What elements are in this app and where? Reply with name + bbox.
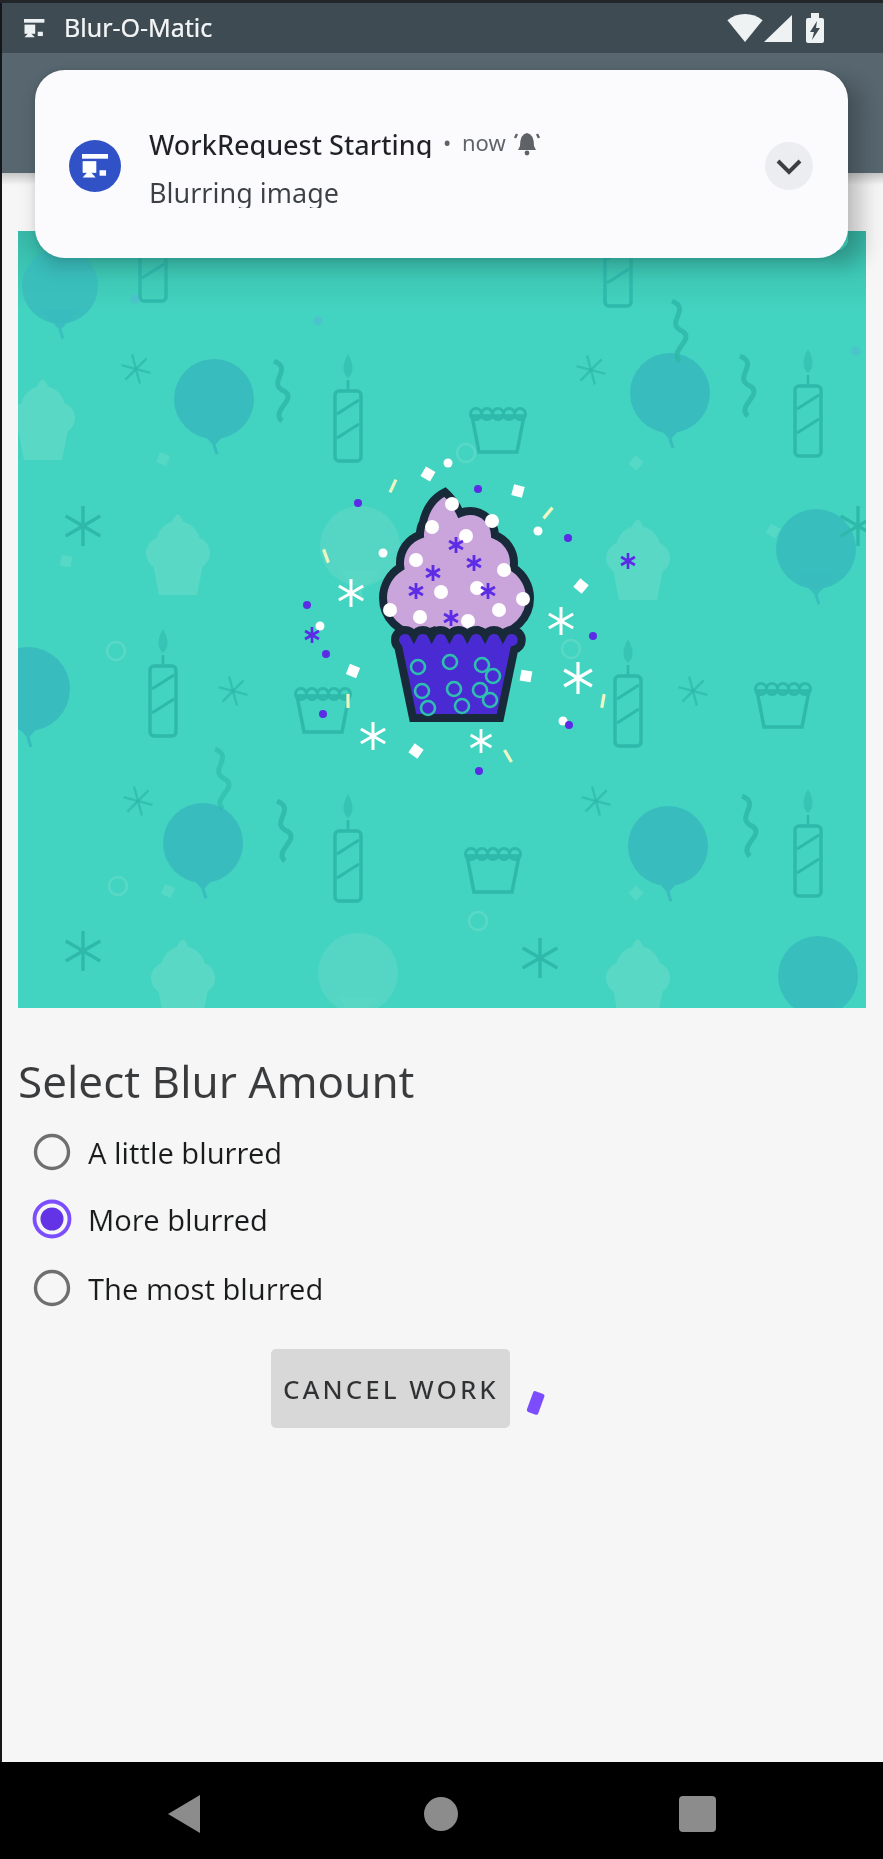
button[interactable]: More blurred — [30, 1198, 268, 1240]
button[interactable]: A little blurred — [30, 1131, 283, 1173]
staticText: A little blurred — [88, 1133, 283, 1172]
staticText: now — [462, 127, 506, 157]
button[interactable] — [661, 1792, 731, 1837]
staticText: More blurred — [88, 1200, 268, 1239]
button[interactable]: CANCEL WORK — [271, 1349, 510, 1428]
button[interactable]: WorkRequest Starting — [35, 70, 848, 258]
staticText: WorkRequest Starting — [149, 126, 433, 158]
staticText: Select Blur Amount — [18, 1051, 415, 1099]
button[interactable]: The most blurred — [30, 1267, 324, 1309]
staticText: Blur-O-Matic — [64, 10, 213, 44]
button[interactable] — [150, 1792, 220, 1837]
staticText: CANCEL WORK — [283, 1371, 499, 1406]
button[interactable] — [406, 1792, 476, 1837]
button[interactable] — [765, 142, 813, 190]
staticText: The most blurred — [88, 1269, 324, 1308]
staticText: Blurring image — [149, 174, 339, 208]
staticText: Blur-O-Matic — [34, 93, 216, 134]
staticText: • — [443, 127, 452, 157]
